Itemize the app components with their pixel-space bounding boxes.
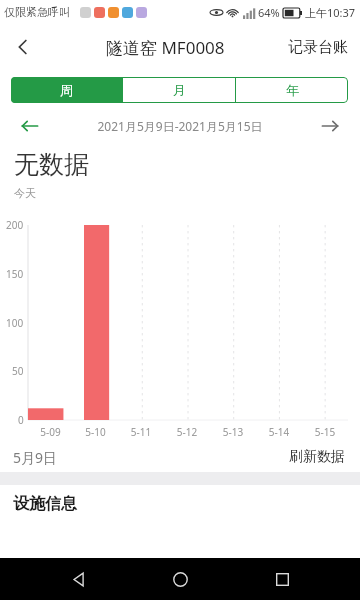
staticText: 5-14: [256, 425, 302, 439]
button[interactable]: Back: [56, 558, 102, 600]
staticText: 上午10:37: [305, 5, 356, 20]
button[interactable]: Back: [0, 24, 46, 70]
button[interactable]: 年: [236, 77, 348, 103]
staticText: 周: [60, 82, 73, 98]
staticText: 设施信息: [13, 494, 77, 514]
button[interactable]: Previous week: [14, 110, 46, 142]
staticText: 2021月5月9日-2021月5月15日: [46, 118, 314, 134]
staticText: 5-13: [210, 425, 256, 439]
staticText: 今天: [14, 186, 36, 200]
staticText: 仅限紧急呼叫: [4, 5, 70, 19]
button[interactable]: 记录台账: [276, 24, 360, 70]
staticText: 64%: [258, 5, 280, 20]
staticText: 5-12: [164, 425, 210, 439]
staticText: 0: [18, 413, 24, 427]
button[interactable]: 刷新数据: [287, 444, 347, 470]
staticText: 100: [6, 316, 24, 330]
button[interactable]: 月: [123, 77, 235, 103]
staticText: 刷新数据: [289, 448, 345, 466]
staticText: 200: [6, 218, 24, 232]
staticText: 5-11: [118, 425, 164, 439]
staticText: 无数据: [14, 149, 89, 180]
staticText: 月: [173, 82, 186, 98]
button[interactable]: 周: [11, 77, 122, 103]
button[interactable]: Next week: [314, 110, 346, 142]
button[interactable]: Recent apps: [259, 558, 305, 600]
staticText: 年: [286, 82, 299, 98]
staticText: 5-10: [73, 425, 118, 439]
staticText: 5月9日: [13, 448, 58, 467]
staticText: 150: [6, 267, 24, 281]
staticText: 记录台账: [288, 38, 348, 57]
staticText: 50: [12, 364, 24, 378]
button[interactable]: Home: [157, 558, 203, 600]
staticText: 隧道窑 MF0008: [106, 36, 225, 59]
staticText: 5-09: [28, 425, 73, 439]
staticText: 5-15: [302, 425, 348, 439]
button[interactable]: 设施信息: [0, 485, 360, 523]
